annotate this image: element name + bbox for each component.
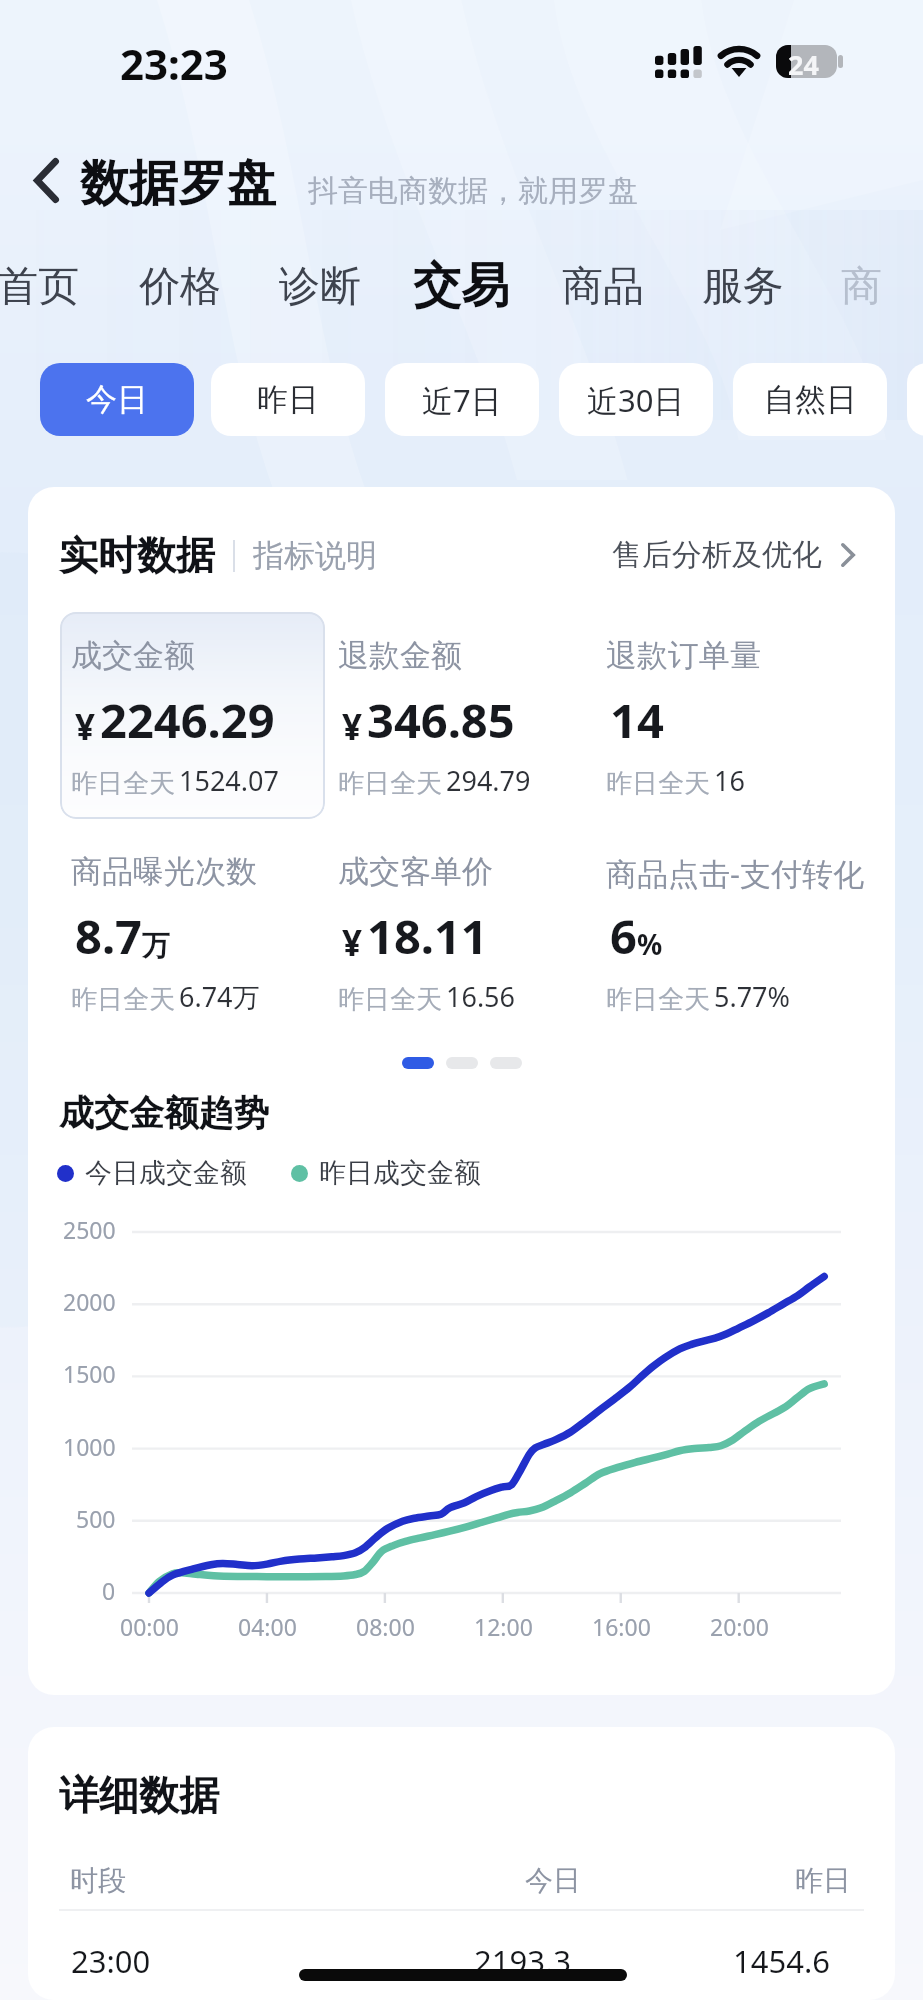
staticText: 退款金额 — [338, 636, 462, 675]
staticText: 00:00 — [120, 1611, 179, 1642]
staticText: 6 — [610, 904, 637, 968]
staticText: 500 — [76, 1503, 116, 1534]
button[interactable]: 商 — [841, 261, 882, 313]
staticText: 详细数据 — [59, 1770, 219, 1820]
staticText: 昨日全天 — [71, 767, 175, 800]
staticText: 商品点击-支付转化 — [606, 852, 864, 894]
staticText: 0 — [102, 1575, 116, 1606]
staticText: 12:00 — [474, 1611, 533, 1642]
staticText: 5.77% — [714, 978, 791, 1015]
staticText: 商 — [841, 261, 882, 313]
staticText: 价格 — [139, 261, 221, 313]
button[interactable]: 指标说明 — [253, 536, 377, 575]
button[interactable]: 首页 — [0, 261, 79, 313]
staticText: 诊断 — [279, 261, 361, 313]
staticText: 成交客单价 — [338, 852, 493, 891]
staticText: 6.74万 — [179, 978, 260, 1015]
button[interactable]: Back — [17, 151, 75, 209]
staticText: 今日 — [525, 1863, 581, 1898]
staticText: 24 — [788, 46, 819, 79]
staticText: 1000 — [63, 1431, 116, 1462]
button[interactable]: 交易 — [413, 256, 509, 316]
button[interactable]: 自然日 — [733, 363, 887, 436]
staticText: 自然日 — [764, 380, 857, 419]
staticText: 商品曝光次数 — [71, 852, 257, 891]
staticText: 2000 — [63, 1286, 116, 1317]
staticText: ¥ — [342, 919, 363, 967]
button[interactable]: 诊断 — [279, 261, 361, 313]
staticText: 商品 — [562, 261, 644, 313]
staticText: 昨日全天 — [606, 983, 710, 1016]
staticText: 近30日 — [587, 379, 685, 421]
button[interactable] — [907, 363, 923, 436]
staticText: 16:00 — [592, 1611, 651, 1642]
staticText: 16 — [714, 762, 745, 799]
staticText: 2193.3 — [474, 1940, 571, 1982]
staticText: 294.79 — [446, 762, 531, 799]
staticText: 18.11 — [367, 904, 488, 968]
staticText: 交易 — [413, 256, 509, 316]
staticText: 今日成交金额 — [85, 1156, 247, 1190]
button[interactable]: 今日 — [40, 363, 194, 436]
staticText: 04:00 — [238, 1611, 297, 1642]
button[interactable]: 近7日 — [385, 363, 539, 436]
staticText: 首页 — [0, 261, 79, 313]
staticText: 14 — [610, 688, 664, 752]
staticText: 数据罗盘 — [80, 153, 276, 215]
staticText: 昨日 — [795, 1863, 851, 1898]
staticText: ¥ — [75, 703, 96, 751]
staticText: 抖音电商数据，就用罗盘 — [308, 172, 638, 210]
staticText: 昨日 — [257, 380, 319, 419]
staticText: 昨日全天 — [338, 983, 442, 1016]
staticText: 时段 — [70, 1863, 126, 1898]
staticText: 8.7 — [75, 904, 142, 968]
staticText: 昨日成交金额 — [319, 1156, 481, 1190]
staticText: 昨日全天 — [606, 767, 710, 800]
staticText: 1454.6 — [733, 1940, 830, 1982]
staticText: 23:00 — [71, 1940, 151, 1982]
staticText: 16.56 — [446, 978, 516, 1015]
staticText: 成交金额趋势 — [59, 1091, 269, 1135]
staticText: 1524.07 — [179, 762, 279, 799]
staticText: 近7日 — [422, 379, 502, 421]
staticText: 2500 — [63, 1214, 116, 1245]
button[interactable]: 价格 — [139, 261, 221, 313]
staticText: 昨日全天 — [71, 983, 175, 1016]
button[interactable]: 售后分析及优化 — [612, 536, 855, 574]
button[interactable]: 昨日 — [211, 363, 365, 436]
staticText: 成交金额 — [71, 636, 195, 675]
staticText: ¥ — [342, 703, 363, 751]
staticText: 万 — [142, 928, 170, 963]
staticText: 退款订单量 — [606, 636, 761, 675]
staticText: 1500 — [63, 1358, 116, 1389]
staticText: 今日 — [86, 380, 148, 419]
button[interactable]: 服务 — [702, 261, 784, 313]
staticText: % — [637, 925, 663, 963]
staticText: 售后分析及优化 — [612, 536, 822, 574]
staticText: 20:00 — [710, 1611, 769, 1642]
staticText: 2246.29 — [100, 688, 275, 752]
staticText: 23:23 — [120, 35, 228, 92]
staticText: 08:00 — [356, 1611, 415, 1642]
button[interactable]: 近30日 — [559, 363, 713, 436]
button[interactable] — [60, 612, 325, 819]
staticText: 实时数据 — [59, 531, 215, 580]
staticText: 346.85 — [367, 688, 515, 752]
button[interactable]: 商品 — [562, 261, 644, 313]
staticText: 服务 — [702, 261, 784, 313]
staticText: 昨日全天 — [338, 767, 442, 800]
